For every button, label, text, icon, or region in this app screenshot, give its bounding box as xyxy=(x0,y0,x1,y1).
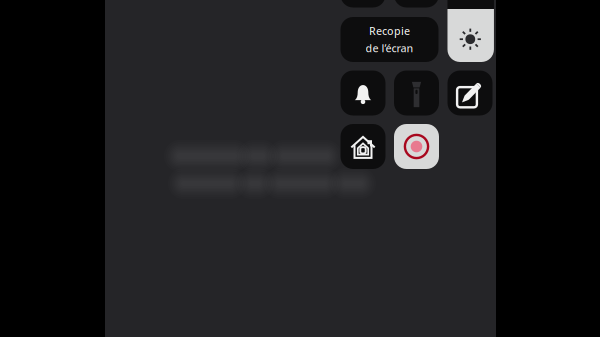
button[interactable]: Domicile xyxy=(340,124,385,169)
button[interactable]: Enregistrement de l'écran xyxy=(394,124,439,169)
button[interactable]: Lecture en cours xyxy=(394,0,439,7)
staticText: de l’écran xyxy=(365,41,413,55)
button[interactable]: Notes xyxy=(447,70,492,115)
button[interactable]: Recopie xyxy=(340,17,438,62)
staticText: Recopie xyxy=(369,24,410,38)
button[interactable]: Sonnerie xyxy=(340,70,385,115)
button[interactable]: Lampe torche xyxy=(394,70,439,115)
button[interactable]: Luminosité xyxy=(447,0,494,62)
button[interactable]: Connectivité xyxy=(340,0,385,7)
